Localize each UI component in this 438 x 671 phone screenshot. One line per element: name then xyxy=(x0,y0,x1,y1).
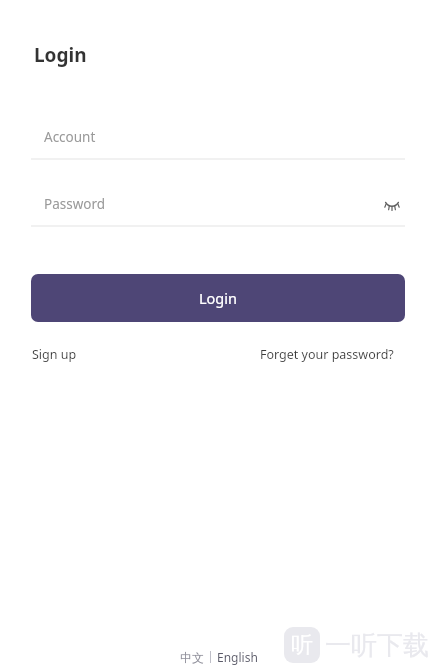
staticText: Sign up xyxy=(32,346,77,363)
staticText: English xyxy=(217,649,258,665)
button[interactable]: Sign up xyxy=(32,343,77,366)
staticText: 一听下载 xyxy=(325,629,429,662)
button[interactable]: English xyxy=(211,647,264,667)
staticText: Login xyxy=(34,42,87,68)
button[interactable]: 中文 xyxy=(174,648,210,667)
staticText: Login xyxy=(199,288,237,308)
staticText: Forget your password? xyxy=(260,346,394,363)
button[interactable]: Forget your password? xyxy=(260,343,394,366)
button[interactable]: Password xyxy=(31,182,405,226)
staticText: Account xyxy=(44,128,96,146)
button[interactable]: Show password xyxy=(379,191,405,217)
staticText: Password xyxy=(44,195,106,213)
button[interactable]: Account xyxy=(31,114,405,159)
staticText: 中文 xyxy=(180,650,204,665)
staticText: 听 xyxy=(291,631,313,659)
button[interactable]: Login xyxy=(31,274,405,322)
